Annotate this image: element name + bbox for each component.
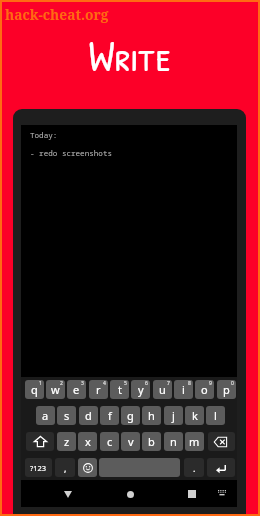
staticText: k bbox=[192, 408, 198, 423]
button[interactable]: Back bbox=[57, 483, 79, 505]
staticText: Write bbox=[0, 27, 260, 84]
button[interactable]: z bbox=[57, 432, 76, 451]
staticText: g bbox=[127, 408, 134, 423]
staticText: j bbox=[172, 408, 175, 423]
button[interactable]: x bbox=[78, 432, 97, 451]
staticText: 6 bbox=[145, 380, 148, 387]
staticText: r bbox=[96, 382, 101, 397]
staticText: 3 bbox=[81, 380, 84, 387]
staticText: b bbox=[148, 434, 155, 449]
staticText: w bbox=[51, 382, 60, 397]
staticText: ?123 bbox=[30, 463, 47, 473]
staticText: t bbox=[118, 382, 122, 397]
button[interactable]: t bbox=[110, 380, 129, 399]
button[interactable]: c bbox=[100, 432, 119, 451]
button[interactable]: ?123 bbox=[25, 458, 52, 477]
staticText: f bbox=[108, 408, 112, 423]
button[interactable]: g bbox=[121, 406, 140, 425]
staticText: Today: bbox=[30, 130, 58, 140]
button[interactable]: Home bbox=[119, 483, 141, 505]
button[interactable]: a bbox=[36, 406, 55, 425]
button[interactable]: Space bbox=[99, 458, 180, 477]
button[interactable]: f bbox=[100, 406, 119, 425]
staticText: a bbox=[42, 408, 49, 423]
button[interactable]: . bbox=[184, 458, 204, 477]
button[interactable]: p bbox=[217, 380, 236, 399]
button[interactable]: o bbox=[195, 380, 214, 399]
staticText: , bbox=[64, 462, 67, 474]
staticText: 0 bbox=[231, 380, 234, 387]
staticText: 5 bbox=[124, 380, 127, 387]
button[interactable]: j bbox=[164, 406, 183, 425]
button[interactable]: s bbox=[57, 406, 76, 425]
button[interactable]: n bbox=[164, 432, 183, 451]
staticText: z bbox=[64, 434, 70, 449]
button[interactable]: k bbox=[185, 406, 204, 425]
button[interactable]: l bbox=[206, 406, 225, 425]
button[interactable]: Switch keyboard bbox=[213, 484, 231, 502]
staticText: p bbox=[223, 382, 230, 397]
staticText: u bbox=[159, 382, 166, 397]
staticText: l bbox=[214, 408, 217, 423]
button[interactable]: d bbox=[79, 406, 98, 425]
button[interactable]: Shift bbox=[26, 432, 54, 451]
staticText: n bbox=[170, 434, 177, 449]
staticText: - redo screenshots bbox=[30, 148, 113, 158]
staticText: 7 bbox=[167, 380, 170, 387]
button[interactable]: Enter bbox=[207, 458, 235, 477]
staticText: x bbox=[85, 434, 91, 449]
staticText: v bbox=[128, 434, 134, 449]
button[interactable]: Backspace bbox=[208, 432, 235, 451]
staticText: q bbox=[31, 382, 38, 397]
button[interactable]: Recent apps bbox=[181, 483, 203, 505]
staticText: 1 bbox=[39, 380, 42, 387]
button[interactable]: w bbox=[46, 380, 65, 399]
staticText: 8 bbox=[188, 380, 191, 387]
staticText: c bbox=[107, 434, 113, 449]
staticText: i bbox=[182, 382, 185, 397]
button[interactable]: h bbox=[142, 406, 161, 425]
staticText: y bbox=[138, 382, 144, 397]
staticText: h bbox=[148, 408, 155, 423]
staticText: 4 bbox=[103, 380, 106, 387]
button[interactable]: i bbox=[174, 380, 193, 399]
button[interactable]: u bbox=[153, 380, 172, 399]
button[interactable]: , bbox=[55, 458, 75, 477]
button[interactable]: e bbox=[67, 380, 86, 399]
button[interactable]: y bbox=[131, 380, 150, 399]
button[interactable]: m bbox=[185, 432, 204, 451]
staticText: o bbox=[201, 382, 208, 397]
staticText: . bbox=[193, 462, 196, 474]
staticText: s bbox=[64, 408, 70, 423]
staticText: hack-cheat.org bbox=[5, 5, 109, 24]
staticText: 9 bbox=[209, 380, 212, 387]
staticText: d bbox=[85, 408, 92, 423]
staticText: e bbox=[73, 382, 80, 397]
button[interactable]: Emoji bbox=[78, 458, 97, 477]
button[interactable]: Today: bbox=[21, 125, 237, 377]
button[interactable]: v bbox=[121, 432, 140, 451]
staticText: m bbox=[189, 434, 200, 449]
button[interactable]: b bbox=[142, 432, 161, 451]
button[interactable]: r bbox=[89, 380, 108, 399]
staticText: 2 bbox=[60, 380, 63, 387]
button[interactable]: q bbox=[25, 380, 44, 399]
